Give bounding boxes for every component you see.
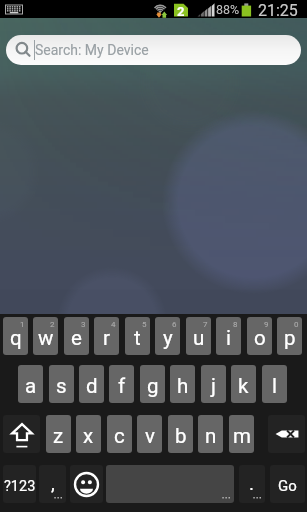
staticText: 8 bbox=[233, 320, 238, 329]
staticText: v bbox=[145, 424, 155, 448]
button[interactable]: j bbox=[201, 365, 226, 403]
staticText: c bbox=[114, 424, 125, 448]
button[interactable]: h bbox=[170, 365, 195, 403]
button[interactable]: m bbox=[229, 415, 254, 453]
staticText: 0 bbox=[294, 320, 299, 329]
button[interactable]: t bbox=[125, 317, 150, 355]
staticText: 4 bbox=[111, 320, 116, 329]
staticText: t bbox=[134, 326, 141, 350]
staticText: r bbox=[103, 326, 110, 350]
button[interactable]: v bbox=[137, 415, 162, 453]
staticText: b bbox=[175, 424, 187, 448]
staticText: s bbox=[56, 374, 67, 398]
button[interactable]: c bbox=[107, 415, 132, 453]
button[interactable]: Go bbox=[270, 465, 305, 503]
staticText: 21:25 bbox=[258, 1, 298, 19]
button[interactable]: n bbox=[198, 415, 223, 453]
staticText: y bbox=[163, 326, 173, 350]
staticText: g bbox=[147, 374, 159, 398]
staticText: 5 bbox=[142, 320, 147, 329]
button[interactable]: b bbox=[168, 415, 193, 453]
staticText: . bbox=[249, 472, 255, 494]
button[interactable]: d bbox=[79, 365, 104, 403]
staticText: e bbox=[71, 326, 82, 350]
button[interactable]: s bbox=[49, 365, 74, 403]
staticText: h bbox=[177, 374, 189, 398]
button[interactable]: Period bbox=[239, 465, 265, 503]
staticText: 6 bbox=[172, 320, 177, 329]
button[interactable]: y bbox=[155, 317, 180, 355]
staticText: 2 bbox=[177, 4, 185, 19]
staticText: 1 bbox=[20, 320, 25, 329]
button[interactable]: q bbox=[3, 317, 28, 355]
button[interactable]: u bbox=[186, 317, 211, 355]
button[interactable]: z bbox=[46, 415, 71, 453]
staticText: f bbox=[118, 374, 126, 398]
button[interactable]: l bbox=[262, 365, 287, 403]
staticText: u bbox=[193, 326, 205, 350]
button[interactable]: r bbox=[94, 317, 119, 355]
button[interactable]: a bbox=[18, 365, 43, 403]
staticText: 9 bbox=[264, 320, 269, 329]
staticText: p bbox=[284, 326, 296, 350]
button[interactable]: p bbox=[277, 317, 302, 355]
staticText: l bbox=[272, 374, 277, 398]
staticText: o bbox=[254, 326, 266, 350]
staticText: 2 bbox=[50, 320, 55, 329]
staticText: i bbox=[226, 326, 231, 350]
button[interactable]: ?123 bbox=[3, 465, 36, 503]
button[interactable]: f bbox=[109, 365, 134, 403]
staticText: Go bbox=[278, 477, 297, 495]
button[interactable]: Space bbox=[106, 465, 234, 503]
button[interactable]: k bbox=[231, 365, 256, 403]
button[interactable]: Backspace bbox=[268, 415, 305, 453]
button[interactable]: o bbox=[247, 317, 272, 355]
button[interactable]: Search: My Device bbox=[6, 35, 301, 65]
button[interactable]: Comma bbox=[39, 465, 66, 503]
button[interactable]: x bbox=[76, 415, 101, 453]
staticText: q bbox=[10, 326, 22, 350]
staticText: m bbox=[233, 424, 251, 448]
staticText: x bbox=[83, 424, 94, 448]
button[interactable]: g bbox=[140, 365, 165, 403]
staticText: k bbox=[238, 374, 249, 398]
staticText: , bbox=[51, 472, 55, 494]
staticText: 7 bbox=[203, 320, 208, 329]
staticText: Search: My Device bbox=[35, 42, 149, 58]
staticText: j bbox=[211, 374, 216, 398]
staticText: w bbox=[38, 326, 54, 350]
button[interactable]: Emoji bbox=[70, 465, 103, 503]
button[interactable]: w bbox=[33, 317, 58, 355]
staticText: d bbox=[86, 374, 98, 398]
staticText: a bbox=[25, 374, 37, 398]
staticText: n bbox=[205, 424, 217, 448]
button[interactable]: Shift bbox=[3, 415, 40, 453]
staticText: ?123 bbox=[4, 478, 36, 495]
button[interactable]: i bbox=[216, 317, 241, 355]
button[interactable]: e bbox=[64, 317, 89, 355]
staticText: 88% bbox=[216, 2, 240, 17]
staticText: 3 bbox=[81, 320, 86, 329]
staticText: z bbox=[53, 424, 64, 448]
